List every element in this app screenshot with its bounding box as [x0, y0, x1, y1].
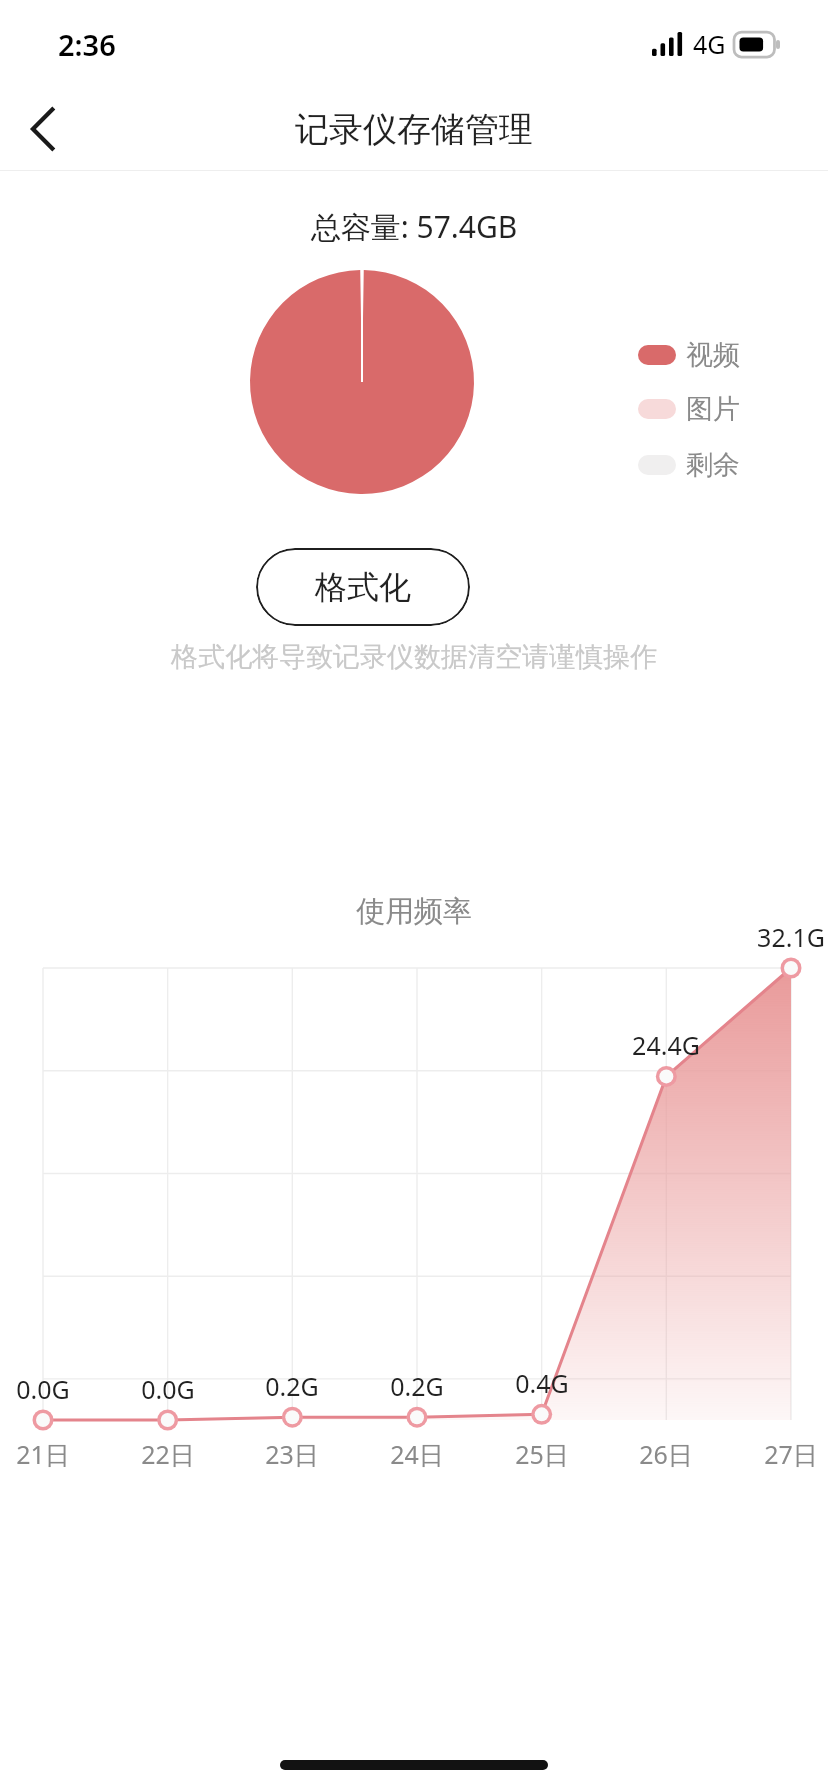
- staticText: 24日: [382, 1437, 452, 1471]
- staticText: 21日: [8, 1437, 78, 1471]
- button[interactable]: 格式化: [256, 548, 470, 626]
- staticText: 26日: [631, 1437, 701, 1471]
- staticText: 0.2G: [255, 1369, 329, 1403]
- staticText: 0.0G: [6, 1372, 80, 1406]
- staticText: 视频: [686, 338, 740, 372]
- button[interactable]: 图片: [638, 392, 740, 426]
- staticText: 27日: [756, 1437, 826, 1471]
- staticText: 图片: [686, 392, 740, 426]
- staticText: 4G: [693, 27, 726, 61]
- staticText: 剩余: [686, 448, 740, 482]
- staticText: 格式化: [315, 567, 411, 607]
- staticText: 2:36: [58, 25, 116, 64]
- staticText: 格式化将导致记录仪数据清空请谨慎操作: [0, 640, 828, 674]
- staticText: 22日: [133, 1437, 203, 1471]
- button[interactable]: Back: [0, 88, 86, 170]
- staticText: 使用频率: [0, 893, 828, 930]
- staticText: 23日: [257, 1437, 327, 1471]
- button[interactable]: 视频: [638, 338, 740, 372]
- staticText: 25日: [507, 1437, 577, 1471]
- staticText: 24.4G: [629, 1028, 703, 1062]
- button[interactable]: 剩余: [638, 448, 740, 482]
- staticText: 总容量: 57.4GB: [0, 206, 828, 247]
- staticText: 0.0G: [131, 1372, 205, 1406]
- staticText: 0.4G: [505, 1366, 579, 1400]
- staticText: 0.2G: [380, 1369, 454, 1403]
- staticText: 记录仪存储管理: [295, 108, 533, 151]
- staticText: 32.1G: [754, 920, 828, 954]
